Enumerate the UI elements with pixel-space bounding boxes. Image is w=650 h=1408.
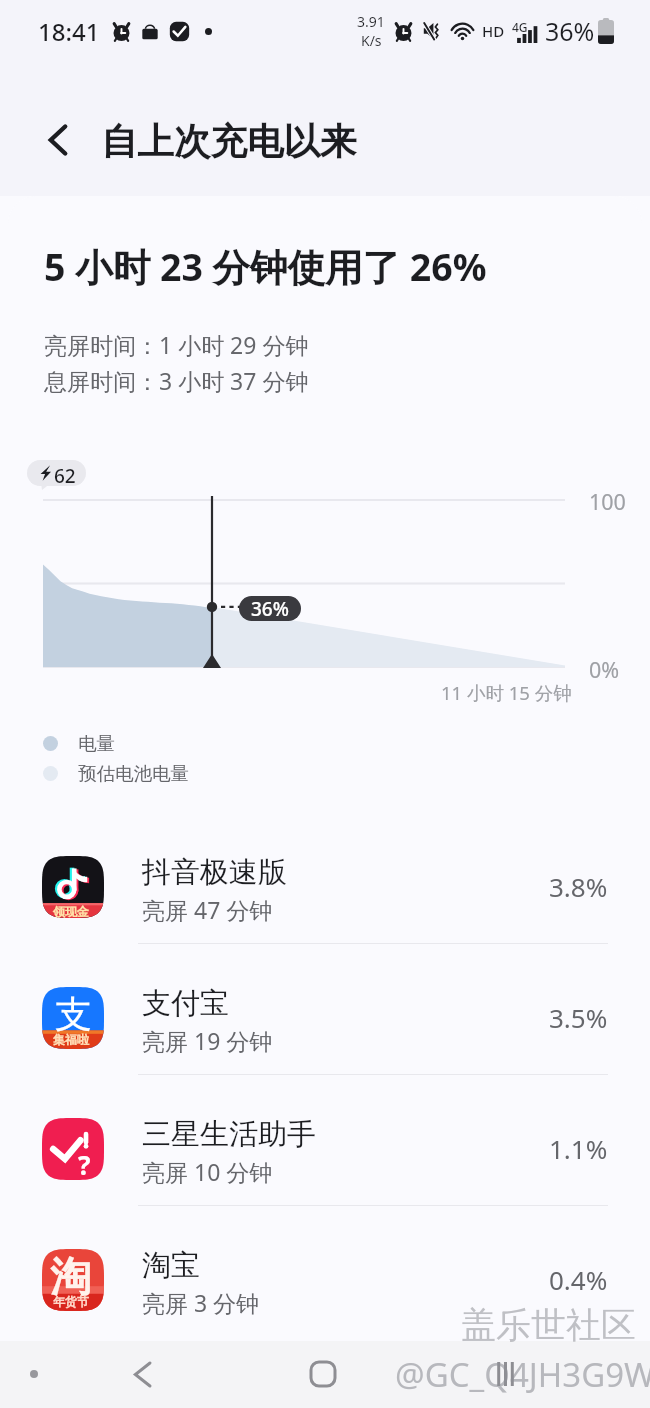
staticText: HD xyxy=(482,21,505,41)
button[interactable]: Assistant xyxy=(10,1350,58,1398)
button[interactable]: Home xyxy=(299,1350,347,1398)
staticText: 三星生活助手 xyxy=(142,1116,316,1153)
staticText: 18:41 xyxy=(38,15,100,48)
staticText: 36% xyxy=(251,596,289,621)
staticText: 预估电池电量 xyxy=(78,762,189,785)
staticText: @GC_Q4JH3G9W xyxy=(395,1352,650,1397)
staticText: 亮屏 47 分钟 xyxy=(142,894,273,925)
staticText: 62 xyxy=(54,463,76,486)
staticText: 自上次充电以来 xyxy=(101,119,357,165)
staticText: 1.1% xyxy=(549,1131,608,1166)
staticText: 息屏时间：3 小时 37 分钟 xyxy=(44,365,309,396)
staticText: 0% xyxy=(589,655,620,684)
button[interactable]: 领现金 xyxy=(0,813,650,944)
staticText: 亮屏 10 分钟 xyxy=(142,1156,273,1187)
button[interactable]: 支 xyxy=(0,944,650,1075)
staticText: 领现金 xyxy=(53,904,89,919)
button[interactable]: ? xyxy=(0,1075,650,1206)
staticText: 亮屏 3 分钟 xyxy=(142,1287,260,1318)
button[interactable]: 淘 xyxy=(0,1206,650,1337)
staticText: 3.91 xyxy=(357,12,385,31)
staticText: 36% xyxy=(545,14,595,48)
staticText: 亮屏时间：1 小时 29 分钟 xyxy=(44,329,309,360)
button[interactable]: Back xyxy=(34,116,82,164)
button[interactable]: Recents xyxy=(481,1350,529,1398)
staticText: 100 xyxy=(589,487,626,516)
staticText: 3.8% xyxy=(549,869,608,904)
button[interactable]: Back xyxy=(118,1350,166,1398)
staticText: 电量 xyxy=(78,732,115,755)
staticText: 淘宝 xyxy=(142,1247,200,1284)
staticText: 抖音极速版 xyxy=(142,854,287,891)
staticText: 盖乐世社区 xyxy=(461,1303,636,1347)
staticText: 0.4% xyxy=(549,1262,608,1297)
staticText: 4G xyxy=(512,19,528,35)
staticText: 支 xyxy=(55,991,92,1038)
staticText: 集福啦 xyxy=(53,1032,89,1047)
staticText: 支付宝 xyxy=(142,985,229,1022)
staticText: 亮屏 19 分钟 xyxy=(142,1025,273,1056)
staticText: 5 小时 23 分钟使用了 26% xyxy=(44,241,487,292)
staticText: 11 小时 15 分钟 xyxy=(441,680,572,705)
staticText: 淘 xyxy=(50,1252,91,1304)
staticText: 3.5% xyxy=(549,1000,608,1035)
staticText: K/s xyxy=(361,31,382,50)
staticText: 年货节 xyxy=(53,1294,89,1309)
staticText: ? xyxy=(78,1147,91,1182)
